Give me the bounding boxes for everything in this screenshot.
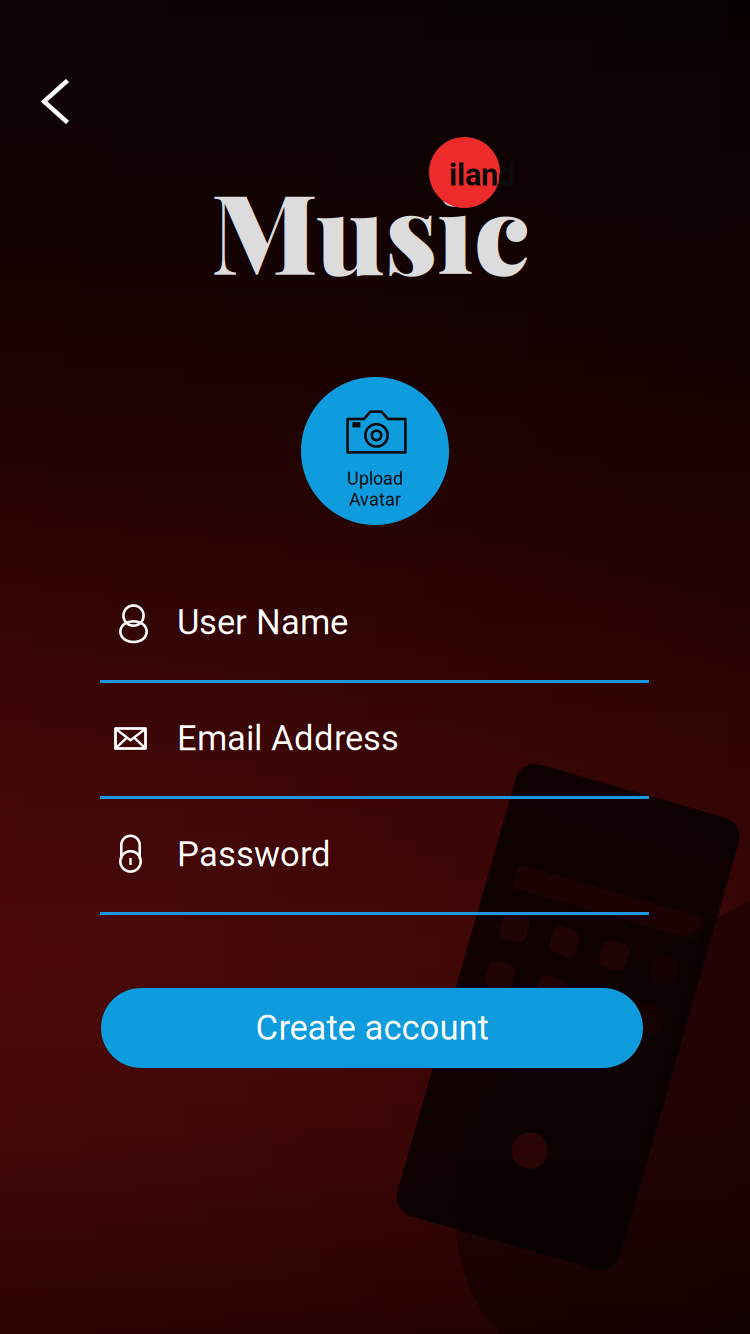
staticText: Avatar — [349, 489, 401, 510]
staticText: Email Address — [177, 718, 399, 759]
button[interactable]: Create account — [101, 988, 643, 1068]
staticText: Upload — [347, 468, 403, 489]
staticText: Password — [177, 834, 331, 875]
staticText: Music — [211, 155, 530, 302]
button[interactable]: User Name — [100, 591, 649, 707]
staticText: User Name — [177, 602, 348, 643]
staticText: iland — [449, 157, 515, 193]
button[interactable]: Upload Avatar — [301, 377, 449, 525]
staticText: Create account — [255, 1008, 488, 1048]
button[interactable]: Email Address — [100, 707, 649, 823]
button[interactable]: Back — [20, 66, 92, 138]
button[interactable]: Password — [100, 823, 649, 939]
